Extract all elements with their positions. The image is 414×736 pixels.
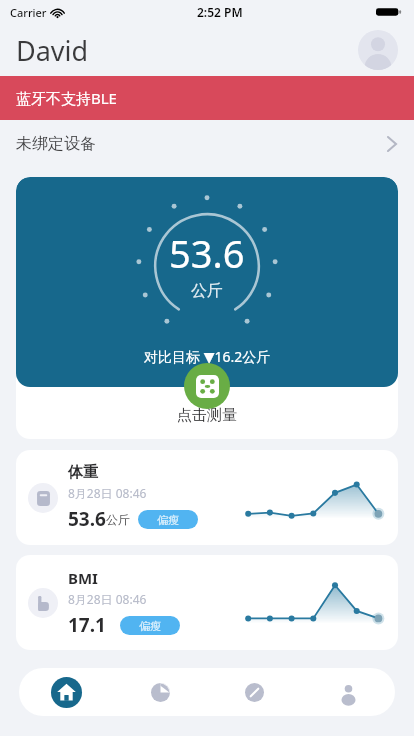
- staticText: 蓝牙不支持BLE: [16, 88, 117, 108]
- staticText: 8月28日 08:46: [68, 485, 147, 501]
- button[interactable]: Statistics: [113, 668, 207, 716]
- button[interactable]: BMI: [16, 555, 398, 650]
- staticText: David: [16, 32, 89, 69]
- staticText: 公斤: [106, 512, 130, 527]
- staticText: 2:52 PM: [197, 4, 243, 20]
- button[interactable]: Profile: [301, 668, 395, 716]
- staticText: 8月28日 08:46: [68, 591, 147, 607]
- button[interactable]: 未绑定设备: [0, 120, 414, 168]
- staticText: 未绑定设备: [16, 134, 96, 154]
- staticText: Carrier: [10, 5, 47, 20]
- staticText: 53.6: [68, 506, 106, 532]
- staticText: BMI: [68, 568, 98, 588]
- button[interactable]: Home: [19, 668, 113, 716]
- staticText: 体重: [68, 463, 98, 482]
- staticText: 公斤: [191, 281, 223, 301]
- button[interactable]: 53.6: [16, 177, 398, 387]
- staticText: 对比目标 ▼16.2公斤: [144, 347, 271, 366]
- staticText: 偏瘦: [139, 619, 161, 633]
- button[interactable]: 体重: [16, 450, 398, 545]
- staticText: 17.1: [68, 612, 106, 638]
- button[interactable]: 蓝牙不支持BLE: [0, 76, 414, 120]
- button[interactable]: 点击测量: [184, 363, 230, 409]
- button[interactable]: Profile: [358, 30, 398, 70]
- staticText: 53.6: [169, 227, 245, 279]
- staticText: 点击测量: [177, 406, 237, 425]
- button[interactable]: Trends: [207, 668, 301, 716]
- staticText: 偏瘦: [157, 513, 179, 527]
